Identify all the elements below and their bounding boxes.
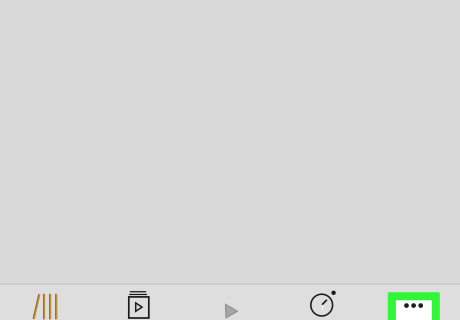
button[interactable]: More: [368, 285, 460, 320]
button[interactable]: Now Playing: [184, 285, 276, 320]
button[interactable]: Library: [0, 285, 92, 320]
button[interactable]: Shows: [92, 285, 184, 320]
button[interactable]: Up Next: [276, 285, 368, 320]
